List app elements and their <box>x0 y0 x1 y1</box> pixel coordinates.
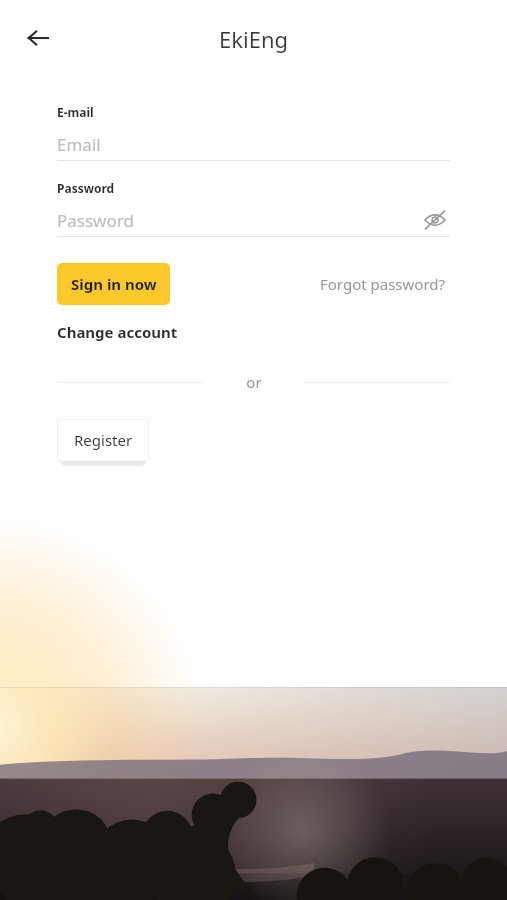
staticText: Sign in now <box>71 274 157 294</box>
staticText: Password <box>57 180 115 196</box>
button[interactable]: Forgot password? <box>316 270 450 298</box>
staticText: or <box>246 372 262 392</box>
button[interactable]: Register <box>57 419 149 461</box>
staticText: Email <box>57 133 101 156</box>
button[interactable]: Back <box>18 18 58 58</box>
button[interactable]: Email <box>57 128 450 160</box>
button[interactable]: Show password <box>420 205 450 235</box>
staticText: E-mail <box>57 104 94 120</box>
staticText: Register <box>74 430 133 450</box>
button[interactable]: Sign in now <box>57 263 170 305</box>
staticText: EkiEng <box>219 24 289 54</box>
button[interactable]: Change account <box>57 322 178 342</box>
staticText: Change account <box>57 322 178 342</box>
staticText: Password <box>57 209 134 232</box>
button[interactable]: Password <box>57 209 420 232</box>
staticText: Forgot password? <box>320 274 446 294</box>
